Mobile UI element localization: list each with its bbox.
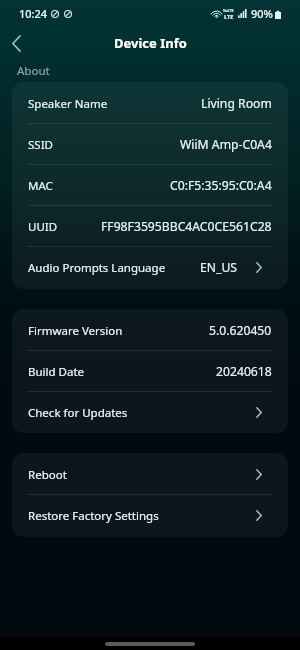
staticText: Audio Prompts Language — [28, 260, 166, 276]
staticText: LTE — [224, 13, 234, 19]
button[interactable]: UUID — [12, 206, 288, 247]
staticText: Build Date — [28, 364, 85, 380]
staticText: FF98F3595BBC4AC0CE561C28 — [101, 218, 272, 235]
staticText: Firmware Version — [28, 323, 123, 339]
staticText: VoLTE — [223, 8, 234, 13]
button[interactable]: Build Date — [12, 351, 288, 392]
staticText: Restore Factory Settings — [28, 508, 159, 524]
staticText: About — [17, 63, 50, 79]
staticText: UUID — [28, 219, 58, 235]
staticText: 10:24 — [19, 6, 48, 21]
staticText: Check for Updates — [28, 405, 128, 421]
button[interactable]: MAC — [12, 165, 288, 206]
staticText: 5.0.620450 — [209, 322, 272, 339]
staticText: EN_US — [200, 259, 238, 276]
button[interactable]: Speaker Name — [12, 83, 288, 124]
button[interactable]: Audio Prompts Language — [12, 247, 288, 288]
staticText: Reboot — [28, 467, 67, 483]
staticText: Device Info — [114, 34, 187, 52]
staticText: Speaker Name — [28, 96, 108, 112]
button[interactable]: Restore Factory Settings — [12, 495, 288, 536]
button[interactable]: Back — [0, 27, 33, 60]
staticText: Living Room — [201, 95, 272, 112]
staticText: C0:F5:35:95:C0:A4 — [170, 177, 272, 194]
staticText: 90% — [251, 6, 273, 21]
staticText: MAC — [28, 178, 53, 194]
button[interactable]: Check for Updates — [12, 392, 288, 433]
button[interactable]: Firmware Version — [12, 310, 288, 351]
staticText: SSID — [28, 137, 53, 153]
staticText: 20240618 — [216, 363, 272, 380]
staticText: WiiM Amp-C0A4 — [180, 136, 272, 153]
button[interactable]: SSID — [12, 124, 288, 165]
button[interactable]: Reboot — [12, 454, 288, 495]
